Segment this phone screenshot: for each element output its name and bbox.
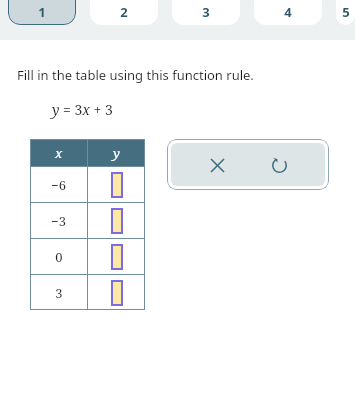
staticText: y bbox=[113, 144, 120, 162]
staticText: 4 bbox=[284, 3, 292, 21]
staticText: Fill in the table using this function ru… bbox=[17, 66, 254, 84]
button[interactable]: 4 bbox=[254, 0, 322, 25]
staticText: 3 bbox=[202, 3, 210, 21]
staticText: −3 bbox=[51, 212, 66, 230]
staticText: 3 bbox=[55, 284, 63, 302]
staticText: x bbox=[55, 144, 63, 162]
staticText: y = 3x + 3 bbox=[52, 100, 113, 119]
button[interactable]: Undo bbox=[262, 148, 296, 182]
staticText: 0 bbox=[55, 248, 63, 266]
button[interactable]: 2 bbox=[90, 0, 158, 25]
staticText: 1 bbox=[38, 3, 46, 21]
button[interactable]: 1 bbox=[8, 0, 76, 25]
button[interactable]: Clear bbox=[200, 148, 234, 182]
staticText: 2 bbox=[120, 3, 128, 21]
staticText: 5 bbox=[342, 3, 350, 21]
button[interactable]: 3 bbox=[172, 0, 240, 25]
staticText: −6 bbox=[51, 176, 66, 194]
button[interactable]: 5 bbox=[336, 0, 355, 25]
